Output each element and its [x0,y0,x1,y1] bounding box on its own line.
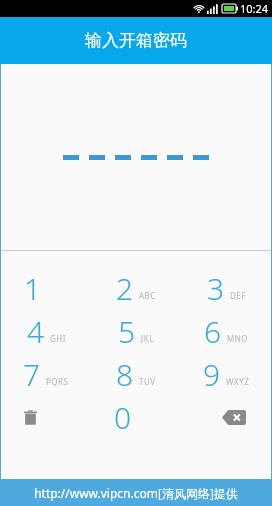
staticText: DEF [230,290,246,301]
button[interactable]: 1 [1,267,91,310]
staticText: 9 [203,354,221,395]
staticText: 10:24 [240,1,269,16]
button[interactable]: 4 [1,310,91,353]
button[interactable]: 2 [91,267,181,310]
staticText: 输入开箱密码 [85,30,187,51]
staticText: WXYZ [226,376,250,387]
button[interactable]: 7 [1,353,91,396]
button[interactable]: 0 [91,396,181,439]
staticText: 7 [23,354,41,395]
staticText: ABC [139,290,156,301]
staticText: 3 [207,268,225,309]
staticText: 6 [204,311,222,352]
button[interactable]: 6 [181,310,271,353]
staticText: TUV [139,376,156,387]
button[interactable]: 9 [181,353,271,396]
button[interactable]: 5 [91,310,181,353]
staticText: http://www.vipcn.com[清风网络]提供 [34,485,238,501]
button[interactable]: 3 [181,267,271,310]
button[interactable]: Clear [1,396,91,439]
staticText: PQRS [46,376,69,387]
staticText: GHI [50,333,66,344]
staticText: 4 [27,311,45,352]
staticText: JKL [141,333,154,344]
staticText: 0 [114,397,132,438]
staticText: 1 [24,268,42,309]
button[interactable]: 8 [91,353,181,396]
staticText: 8 [116,354,134,395]
staticText: 2 [116,268,134,309]
button[interactable]: Backspace [181,396,271,439]
staticText: 5 [118,311,136,352]
staticText: MNO [227,333,249,344]
